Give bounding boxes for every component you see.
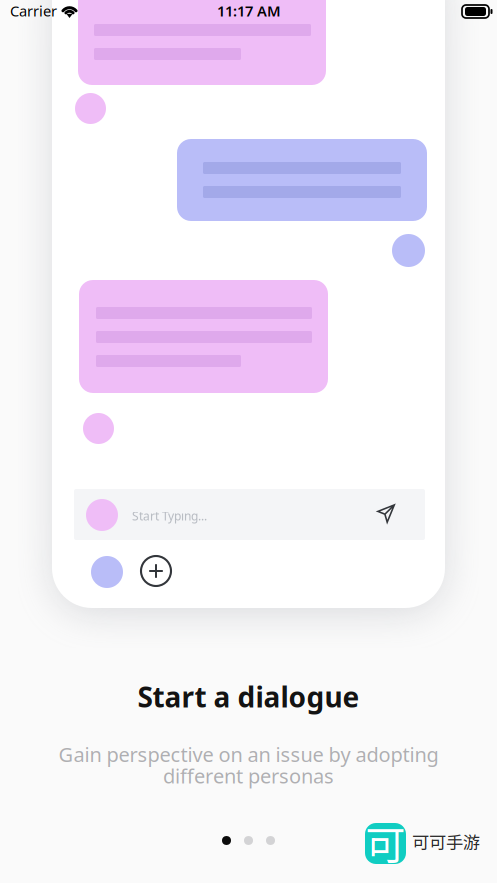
staticText: 11:17 AM xyxy=(217,1,281,20)
staticText: Gain perspective on an issue by adopting xyxy=(58,741,438,768)
button[interactable]: Start Typing... xyxy=(52,0,403,1)
staticText: Start Typing... xyxy=(132,508,207,524)
staticText: Start a dialogue xyxy=(137,678,359,715)
staticText: 可 xyxy=(365,813,405,871)
button[interactable]: Page 2 xyxy=(244,836,253,845)
staticText: different personas xyxy=(163,763,334,789)
staticText: 可可手游 xyxy=(412,829,480,854)
staticText: Carrier xyxy=(10,1,57,20)
button[interactable]: Page 1 xyxy=(222,836,231,845)
button[interactable]: Page 3 xyxy=(266,836,275,845)
